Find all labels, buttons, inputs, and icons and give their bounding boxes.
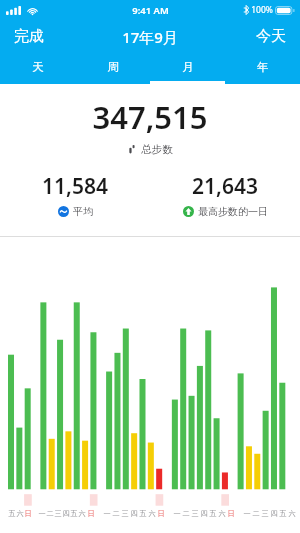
staticText: 100% bbox=[251, 4, 273, 16]
staticText: 11,584 bbox=[42, 172, 108, 201]
staticText: 四 bbox=[130, 509, 138, 518]
staticText: 日 bbox=[87, 509, 95, 518]
button[interactable]: 完成 bbox=[0, 22, 58, 51]
staticText: 三 bbox=[191, 509, 199, 518]
staticText: 二 bbox=[112, 509, 120, 518]
staticText: 五 bbox=[139, 509, 147, 518]
staticText: 日 bbox=[157, 509, 165, 518]
staticText: 一 bbox=[243, 509, 251, 518]
staticText: 四 bbox=[62, 509, 70, 518]
staticText: 六 bbox=[148, 509, 156, 518]
button[interactable]: 五 bbox=[0, 237, 300, 525]
staticText: 月 bbox=[182, 60, 194, 74]
other: Best day bbox=[183, 206, 194, 217]
staticText: 五 bbox=[279, 509, 287, 518]
staticText: 9:41 AM bbox=[132, 4, 169, 17]
button[interactable]: 周 bbox=[75, 53, 150, 84]
staticText: 五 bbox=[8, 509, 16, 518]
staticText: 日 bbox=[227, 509, 235, 518]
staticText: 平均 bbox=[73, 205, 93, 218]
staticText: 今天 bbox=[256, 27, 286, 46]
staticText: 347,515 bbox=[92, 96, 208, 138]
staticText: 一 bbox=[103, 509, 111, 518]
staticText: 一 bbox=[38, 509, 46, 518]
staticText: 年 bbox=[257, 60, 269, 74]
staticText: 二 bbox=[252, 509, 260, 518]
staticText: 三 bbox=[54, 509, 62, 518]
staticText: 六 bbox=[78, 509, 86, 518]
staticText: 总步数 bbox=[141, 143, 173, 156]
staticText: 最高步数的一日 bbox=[198, 205, 268, 218]
staticText: 四 bbox=[270, 509, 278, 518]
staticText: 六 bbox=[218, 509, 226, 518]
button[interactable]: 年 bbox=[225, 53, 300, 84]
button[interactable]: 天 bbox=[0, 53, 75, 84]
staticText: 三 bbox=[121, 509, 129, 518]
button[interactable]: 月 bbox=[150, 53, 225, 84]
staticText: 三 bbox=[261, 509, 269, 518]
staticText: 六 bbox=[288, 509, 296, 518]
other: Average bbox=[58, 206, 69, 217]
staticText: 六 bbox=[16, 509, 24, 518]
staticText: 二 bbox=[182, 509, 190, 518]
staticText: 四 bbox=[200, 509, 208, 518]
staticText: 周 bbox=[107, 60, 119, 74]
staticText: 五 bbox=[209, 509, 217, 518]
staticText: 二 bbox=[46, 509, 54, 518]
staticText: 21,643 bbox=[192, 172, 258, 201]
staticText: 五 bbox=[70, 509, 78, 518]
button[interactable]: 今天 bbox=[242, 22, 300, 51]
staticText: 一 bbox=[173, 509, 181, 518]
button[interactable]: 11,584 bbox=[0, 172, 150, 218]
staticText: 天 bbox=[32, 60, 44, 74]
button[interactable]: 21,643 bbox=[150, 172, 300, 218]
staticText: 完成 bbox=[14, 27, 44, 46]
staticText: 日 bbox=[24, 509, 32, 518]
staticText: 17年9月 bbox=[122, 27, 178, 47]
